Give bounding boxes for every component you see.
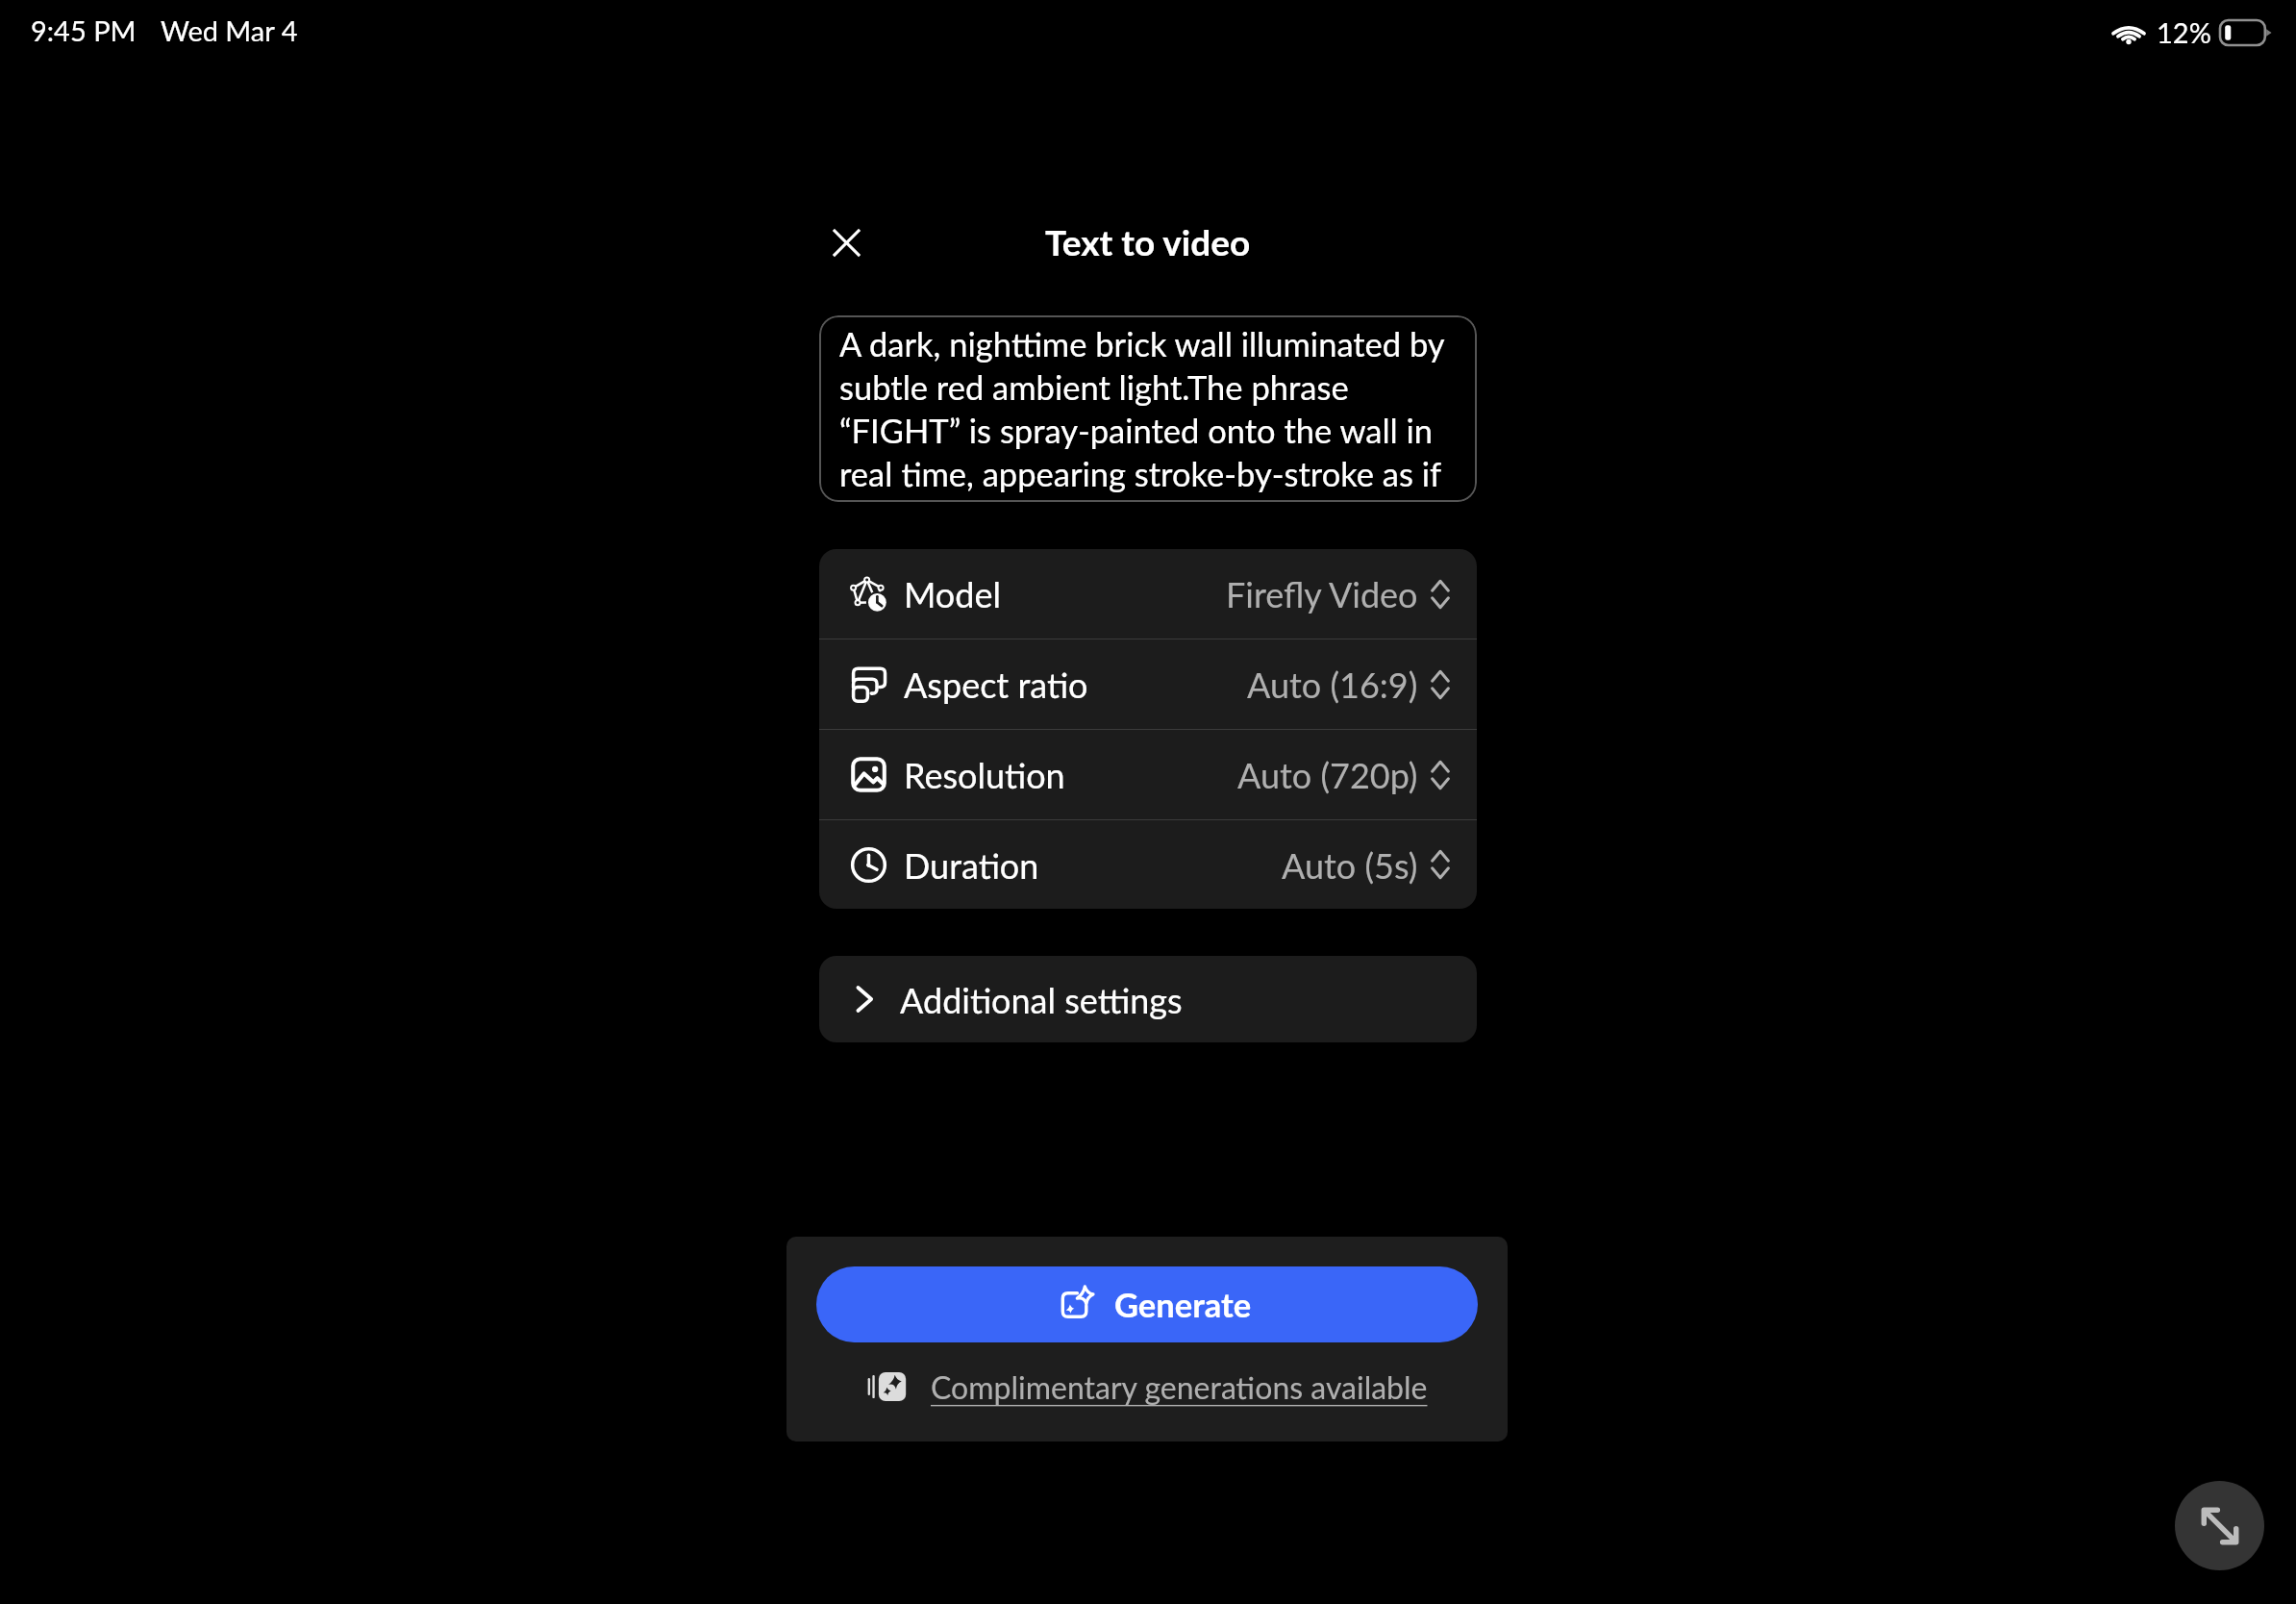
staticText: A dark, nighttime brick wall illuminated… <box>839 324 1445 493</box>
staticText: Model <box>904 573 1001 614</box>
button[interactable]: Close <box>802 198 890 287</box>
staticText: Resolution <box>904 754 1065 795</box>
button[interactable]: A dark, nighttime brick wall illuminated… <box>819 315 1477 502</box>
staticText: Aspect ratio <box>904 664 1088 705</box>
staticText: Auto (720p) <box>1237 754 1418 795</box>
staticText: 9:45 PM <box>31 13 137 47</box>
staticText: Duration <box>904 844 1039 886</box>
button[interactable]: Additional settings <box>819 956 1477 1042</box>
button[interactable]: Generate <box>816 1266 1478 1342</box>
button[interactable]: Model <box>819 549 1477 639</box>
button[interactable]: Complimentary generations available <box>867 1368 1428 1405</box>
staticText: Text to video <box>1045 220 1251 263</box>
staticText: Auto (16:9) <box>1247 664 1418 705</box>
button[interactable]: Duration <box>819 820 1477 909</box>
button[interactable]: Aspect ratio <box>819 639 1477 729</box>
staticText: Wed Mar 4 <box>161 13 298 47</box>
staticText: Auto (5s) <box>1282 844 1418 886</box>
staticText: Generate <box>1114 1285 1252 1324</box>
staticText: Complimentary generations available <box>931 1368 1428 1405</box>
button[interactable]: Resolution <box>819 730 1477 819</box>
button[interactable]: Expand <box>2175 1481 2264 1570</box>
staticText: 12% <box>2157 15 2211 49</box>
staticText: Firefly Video <box>1226 573 1418 614</box>
staticText: Additional settings <box>900 979 1183 1020</box>
